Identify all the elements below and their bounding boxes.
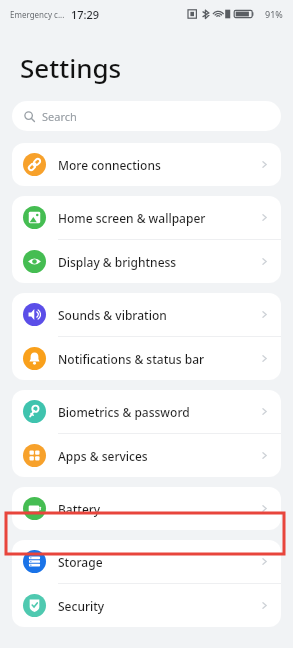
button[interactable]: Apps & services xyxy=(12,434,281,477)
staticText: Search xyxy=(42,109,77,124)
staticText: 91% xyxy=(265,8,283,20)
button[interactable]: Sounds & vibration xyxy=(12,293,281,336)
staticText: 17:29 xyxy=(71,7,100,22)
staticText: Display & brightness xyxy=(58,254,260,270)
staticText: Security xyxy=(58,598,260,614)
staticText: Notifications & status bar xyxy=(58,351,260,367)
button[interactable]: Search xyxy=(12,101,281,131)
staticText: Emergency c... xyxy=(10,9,65,20)
button[interactable]: Home screen & wallpaper xyxy=(12,196,281,239)
button[interactable]: Storage xyxy=(12,540,281,583)
staticText: Storage xyxy=(58,554,260,570)
button[interactable]: Biometrics & password xyxy=(12,390,281,433)
button[interactable]: Display & brightness xyxy=(12,240,281,283)
button[interactable]: Battery xyxy=(12,487,281,530)
staticText: Settings xyxy=(20,50,122,85)
button[interactable]: Security xyxy=(12,584,281,627)
staticText: Biometrics & password xyxy=(58,404,260,420)
staticText: Battery xyxy=(58,501,260,517)
button[interactable]: More connections xyxy=(12,143,281,186)
staticText: Home screen & wallpaper xyxy=(58,210,260,226)
staticText: Apps & services xyxy=(58,448,260,464)
button[interactable]: Notifications & status bar xyxy=(12,337,281,380)
staticText: Sounds & vibration xyxy=(58,307,260,323)
staticText: More connections xyxy=(58,157,260,173)
